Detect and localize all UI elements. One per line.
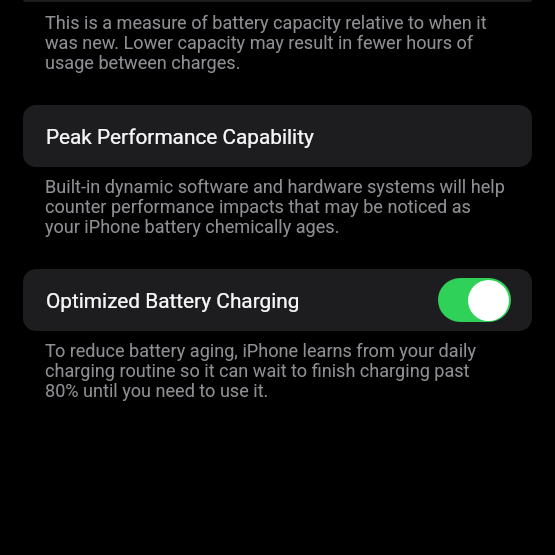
staticText: Optimized Battery Charging [46, 289, 300, 313]
button[interactable]: Peak Performance Capability [23, 105, 532, 167]
button[interactable]: Optimized Battery Charging, on [438, 278, 511, 322]
staticText: To reduce battery aging, iPhone learns f… [45, 340, 506, 402]
staticText: Peak Performance Capability [46, 125, 314, 149]
staticText: This is a measure of battery capacity re… [45, 12, 506, 74]
button[interactable]: Optimized Battery Charging [23, 269, 532, 331]
staticText: Built-in dynamic software and hardware s… [45, 176, 506, 238]
